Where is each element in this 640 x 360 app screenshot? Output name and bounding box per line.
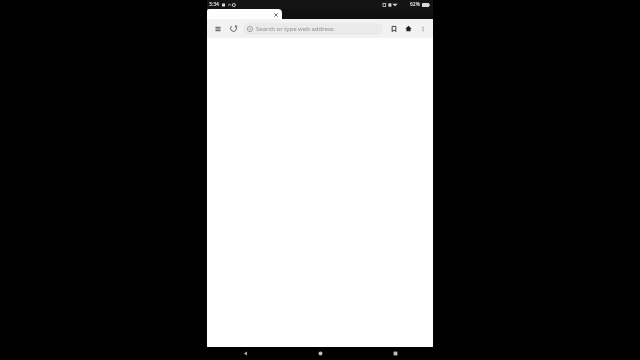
button[interactable]: Recent apps — [358, 347, 433, 360]
button[interactable]: Close tab — [272, 11, 279, 18]
button[interactable]: Bookmark — [387, 22, 400, 35]
button[interactable]: Back — [207, 347, 283, 360]
button[interactable]: Home — [402, 22, 415, 35]
button[interactable]: More options — [417, 23, 429, 35]
staticText: 62% — [410, 1, 420, 8]
staticText: 3:34 — [209, 1, 219, 8]
staticText: Search or type web address — [256, 25, 334, 33]
button[interactable]: Reload — [227, 22, 240, 35]
button[interactable]: Close tab — [207, 9, 282, 19]
button[interactable]: Home — [283, 347, 358, 360]
button[interactable]: Menu — [211, 22, 224, 35]
button[interactable]: Search or type web address — [243, 23, 383, 35]
